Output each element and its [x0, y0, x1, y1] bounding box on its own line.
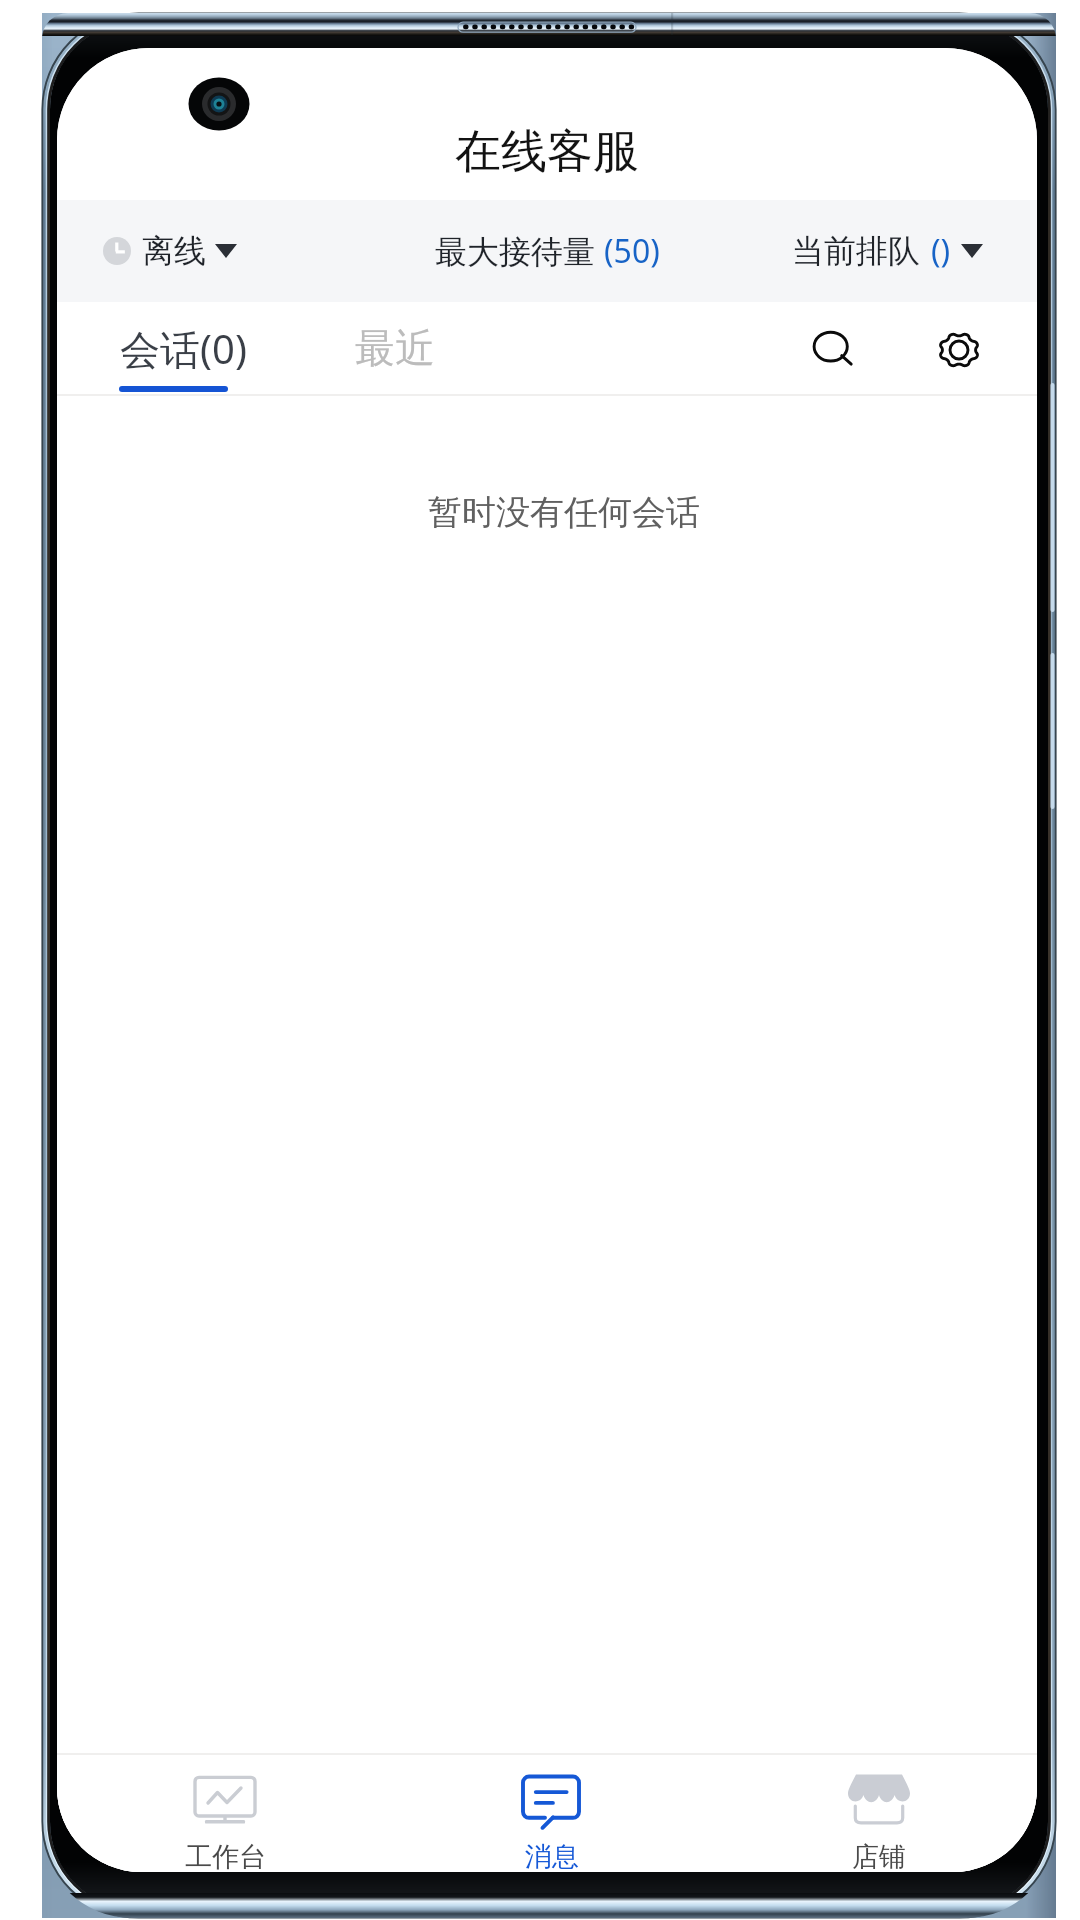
button[interactable]: 离线 [103, 200, 237, 302]
button[interactable]: 会话(0) [97, 302, 269, 394]
staticText: 会话(0) [120, 321, 247, 376]
button[interactable]: 最大接待量 [435, 200, 660, 302]
button[interactable]: 消息 [383, 1755, 710, 1872]
button[interactable]: Search [783, 302, 880, 394]
staticText: 暂时没有任何会话 [428, 491, 700, 534]
staticText: 离线 [142, 231, 206, 271]
button[interactable]: Settings [910, 302, 1007, 394]
button[interactable]: 最近 [333, 302, 457, 394]
staticText: 消息 [525, 1840, 579, 1872]
button[interactable]: 工作台 [57, 1755, 383, 1872]
button[interactable]: 当前排队 [792, 200, 983, 302]
staticText: 最近 [355, 323, 435, 373]
staticText: () [931, 229, 951, 273]
staticText: 店铺 [852, 1840, 906, 1872]
staticText: 当前排队 [792, 231, 920, 271]
staticText: 工作台 [185, 1840, 266, 1872]
staticText: 在线客服 [455, 123, 639, 181]
staticText: (50) [604, 229, 660, 273]
button[interactable]: 店铺 [710, 1755, 1037, 1872]
staticText: 最大接待量 [435, 229, 604, 273]
